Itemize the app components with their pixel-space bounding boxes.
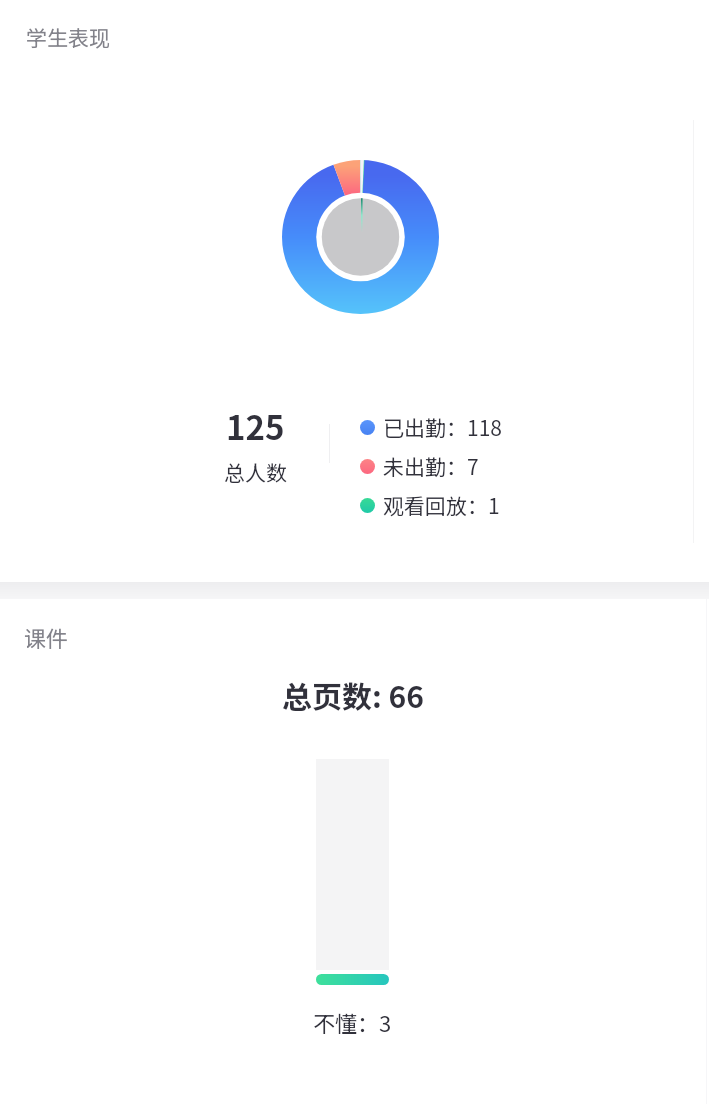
- staticText: 总人数: [224, 457, 287, 487]
- staticText: 观看回放：1: [383, 490, 500, 520]
- staticText: 未出勤：7: [383, 451, 479, 481]
- button[interactable]: 学生表现: [0, 0, 709, 582]
- button[interactable]: 课件: [0, 599, 709, 1104]
- staticText: 125: [226, 402, 285, 450]
- button[interactable]: 已出勤：118: [360, 412, 502, 442]
- button[interactable]: 未出勤：7: [360, 451, 479, 481]
- staticText: 已出勤：118: [383, 412, 502, 442]
- staticText: 课件: [24, 621, 69, 653]
- staticText: 总页数: 66: [282, 673, 424, 716]
- staticText: 不懂：3: [313, 1006, 392, 1038]
- staticText: 学生表现: [26, 22, 110, 52]
- button[interactable]: 观看回放：1: [360, 490, 500, 520]
- other: 出勤情况环形图: [282, 160, 439, 314]
- button[interactable]: 125: [175, 402, 336, 487]
